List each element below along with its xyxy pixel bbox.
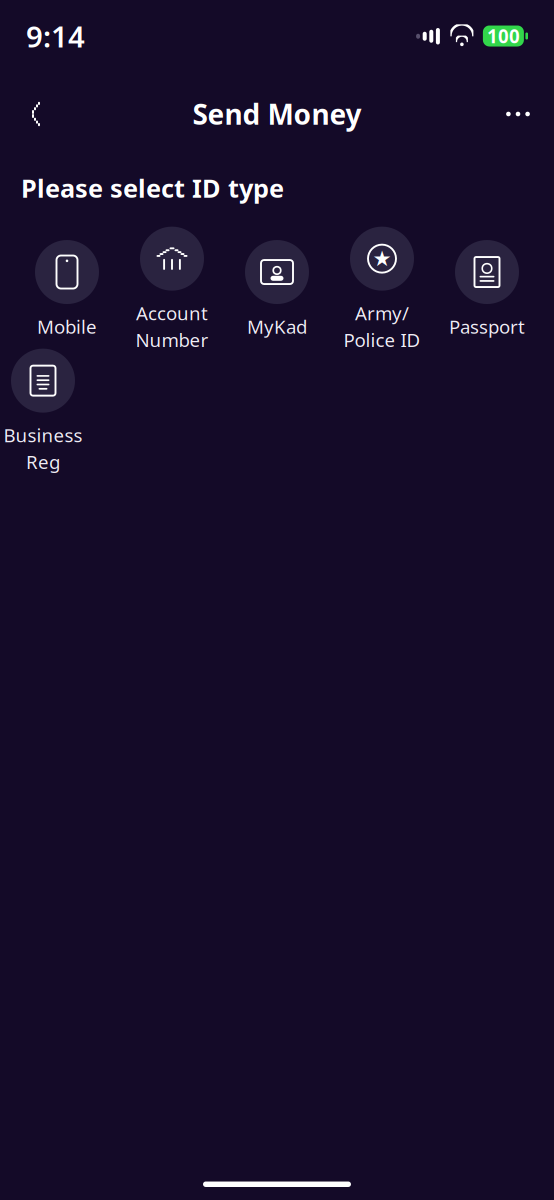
button[interactable]: ★ bbox=[339, 227, 425, 352]
staticText: Army/ bbox=[355, 301, 409, 325]
button[interactable]: MyKad bbox=[234, 240, 320, 339]
staticText: Number bbox=[135, 327, 208, 352]
staticText: Mobile bbox=[37, 314, 97, 339]
staticText: Business bbox=[3, 423, 82, 447]
staticText: 9:14 bbox=[26, 16, 85, 55]
staticText: Account bbox=[136, 301, 208, 325]
button[interactable]: Account bbox=[129, 227, 215, 352]
staticText: Please select ID type bbox=[21, 171, 284, 205]
staticText: Send Money bbox=[192, 95, 361, 133]
staticText: MyKad bbox=[247, 314, 307, 339]
staticText: Passport bbox=[449, 314, 525, 339]
staticText: ★ bbox=[372, 246, 391, 271]
button[interactable]: Back bbox=[13, 91, 59, 137]
button[interactable]: Business bbox=[0, 349, 86, 474]
staticText: Police ID bbox=[343, 327, 420, 352]
button[interactable]: Mobile bbox=[24, 240, 110, 339]
button[interactable]: Passport bbox=[444, 240, 530, 339]
staticText: 100 bbox=[487, 24, 520, 48]
staticText: Reg bbox=[26, 449, 60, 474]
button[interactable]: More options bbox=[495, 91, 541, 137]
